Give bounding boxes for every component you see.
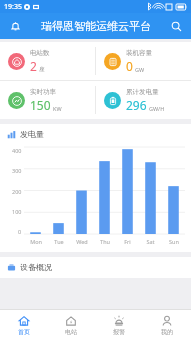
staticText: 电站 <box>65 328 77 336</box>
button[interactable]: 装机容量 <box>96 42 191 80</box>
staticText: 累计发电量 <box>126 88 159 96</box>
staticText: 0 <box>18 228 22 234</box>
staticText: Tue <box>54 238 64 245</box>
staticText: 200 <box>12 188 22 194</box>
staticText: 设备概况 <box>20 262 52 272</box>
staticText: Sat <box>146 238 155 245</box>
staticText: 2 <box>30 58 37 74</box>
button[interactable]: 我的 <box>143 310 191 340</box>
button[interactable]: 电站数 <box>0 42 95 80</box>
button[interactable]: Search <box>167 17 185 35</box>
staticText: Fri <box>124 238 131 245</box>
button[interactable]: 实时功率 <box>0 81 95 119</box>
staticText: 座 <box>39 66 45 73</box>
staticText: 瑞得恩智能运维云平台 <box>41 19 151 33</box>
staticText: 首页 <box>18 328 30 336</box>
staticText: GW/H <box>149 105 165 112</box>
button[interactable]: Notifications <box>6 17 24 35</box>
staticText: Thu <box>100 238 110 245</box>
staticText: 发电量 <box>20 129 44 139</box>
button[interactable]: 电站 <box>47 310 95 340</box>
staticText: Sun <box>169 238 179 245</box>
staticText: 我的 <box>161 328 173 336</box>
staticText: 296 <box>126 97 147 113</box>
staticText: KW <box>53 105 62 112</box>
staticText: 报警 <box>113 328 125 336</box>
staticText: 0 <box>126 58 133 74</box>
staticText: 150 <box>30 97 51 113</box>
staticText: 19:35 <box>4 2 22 12</box>
staticText: 300 <box>12 167 22 173</box>
staticText: GW <box>135 66 145 73</box>
staticText: Wed <box>76 238 88 245</box>
staticText: 实时功率 <box>30 88 56 96</box>
button[interactable]: 报警 <box>95 310 143 340</box>
button[interactable]: 首页 <box>0 310 47 340</box>
staticText: 100 <box>12 208 22 214</box>
button[interactable]: 累计发电量 <box>96 81 191 119</box>
staticText: 装机容量 <box>126 49 152 57</box>
staticText: Mon <box>30 238 42 245</box>
staticText: 电站数 <box>30 49 50 57</box>
staticText: 400 <box>12 147 22 153</box>
